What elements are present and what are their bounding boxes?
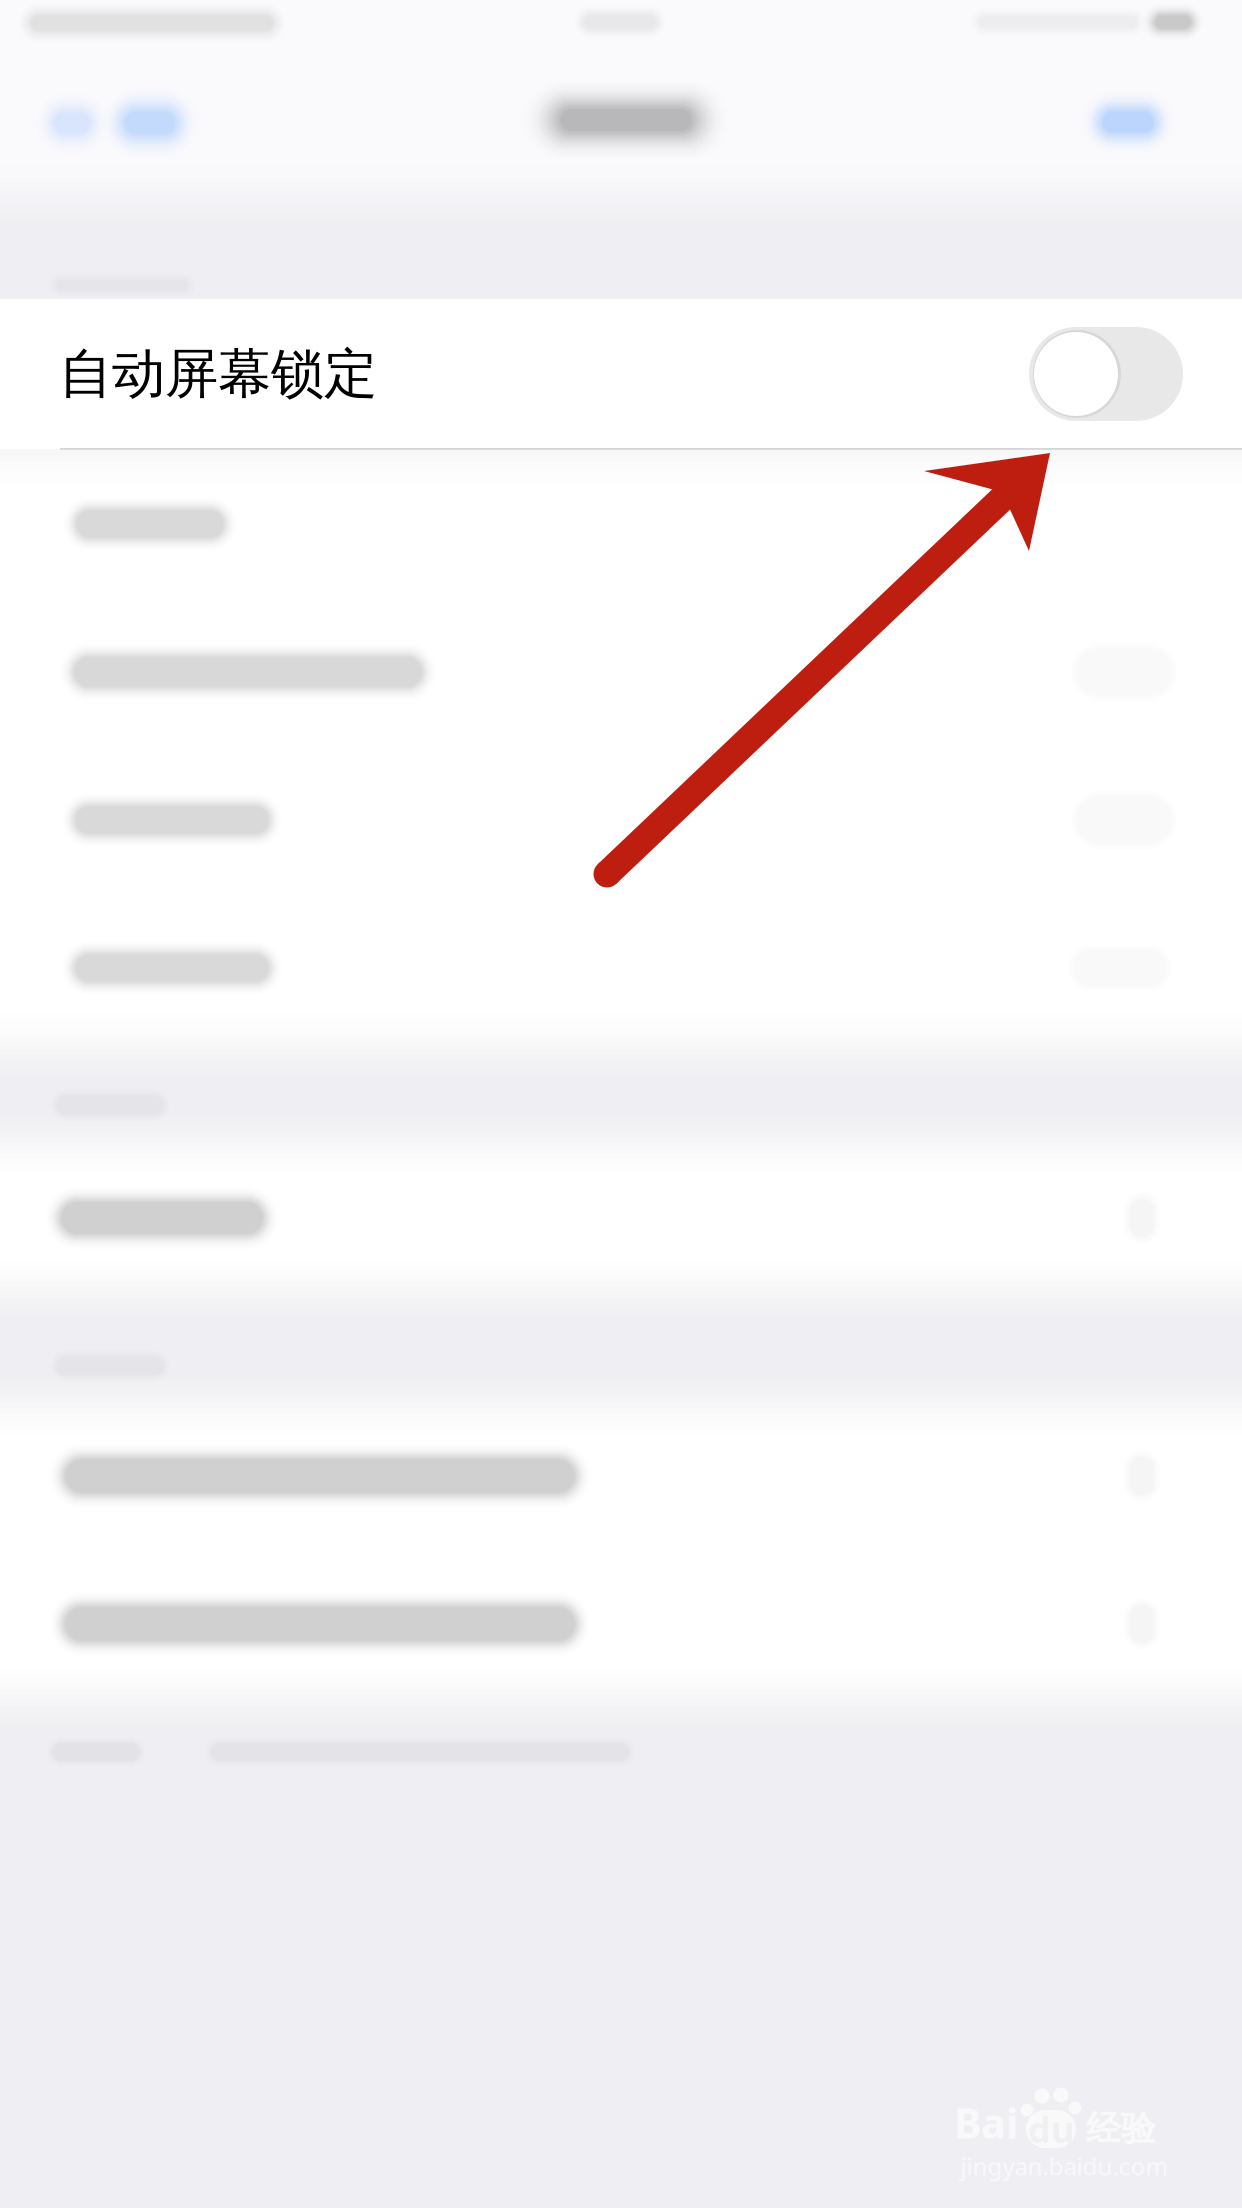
staticText: 经验 — [1086, 2107, 1156, 2150]
staticText: du — [1028, 2105, 1074, 2153]
staticText: Bai — [954, 2095, 1018, 2150]
staticText: 自动屏幕锁定 — [59, 341, 377, 407]
button[interactable]: 自动屏幕锁定 — [0, 299, 1242, 449]
